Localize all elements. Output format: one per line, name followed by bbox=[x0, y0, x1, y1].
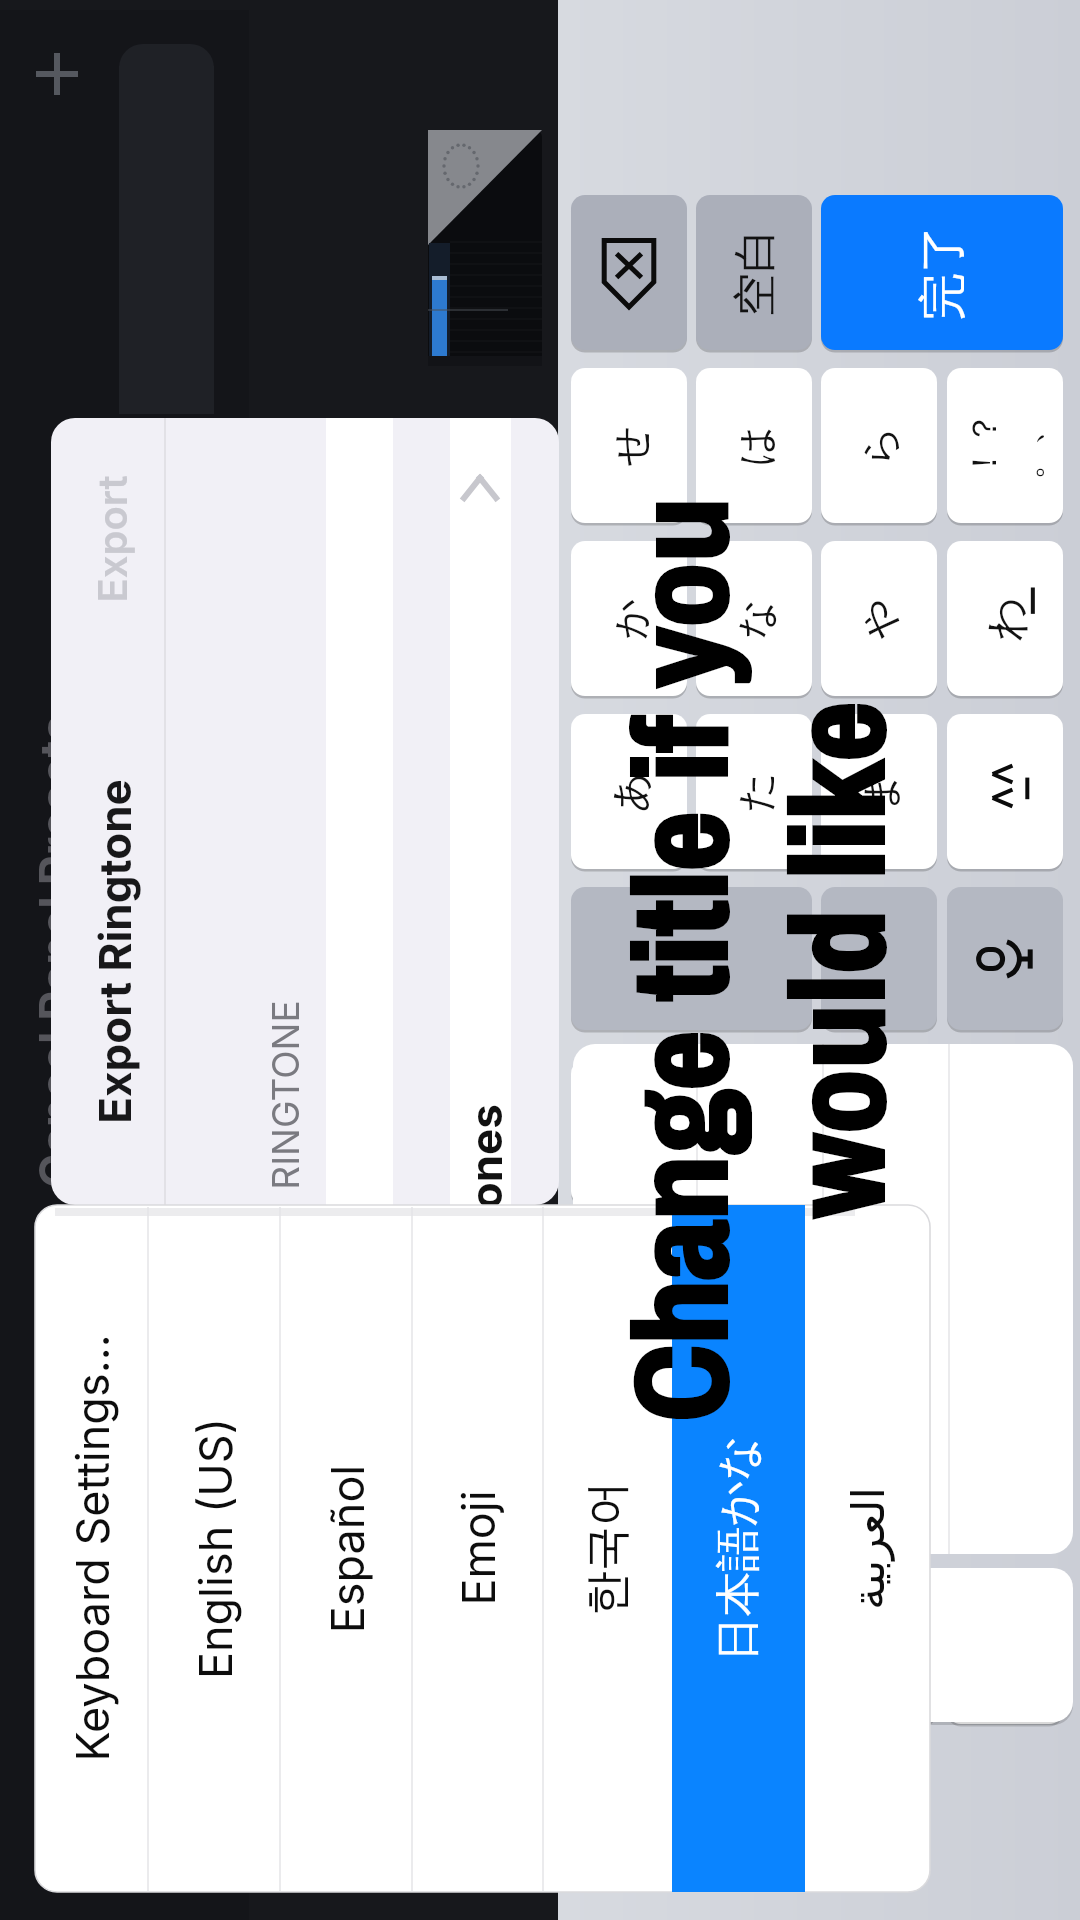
staticText: Export Ringtone bbox=[88, 779, 141, 1124]
button[interactable]: Español bbox=[280, 1205, 412, 1892]
button[interactable]: ！？ 。、 bbox=[947, 368, 1063, 523]
button[interactable]: 空白 bbox=[696, 195, 812, 350]
button[interactable]: Delete bbox=[571, 195, 687, 350]
button[interactable]: あ bbox=[571, 714, 687, 869]
staticText: や bbox=[854, 598, 904, 639]
staticText: か bbox=[604, 598, 654, 639]
button[interactable]: せ bbox=[571, 368, 687, 523]
staticText: ！？ 。、 bbox=[962, 411, 1049, 479]
button[interactable]: か bbox=[571, 541, 687, 696]
button[interactable]: ら bbox=[821, 368, 937, 523]
button[interactable]: は bbox=[696, 368, 812, 523]
staticText: は bbox=[729, 425, 779, 466]
staticText: せ bbox=[604, 425, 654, 466]
staticText: Keyboard Settings… bbox=[65, 1334, 119, 1762]
staticText: 完了 bbox=[912, 224, 972, 320]
staticText: Change title if you would like bbox=[591, 497, 921, 1422]
button[interactable]: た bbox=[696, 714, 812, 869]
button[interactable]: Small kana, dakuten bbox=[947, 714, 1063, 869]
button[interactable]: わ bbox=[947, 541, 1063, 696]
staticText: た bbox=[729, 771, 779, 812]
button[interactable]: 한국어 bbox=[543, 1205, 672, 1892]
staticText: 日本語かな bbox=[710, 1434, 767, 1662]
button[interactable]: や bbox=[821, 541, 937, 696]
staticText: 한국어 bbox=[579, 1481, 636, 1616]
button[interactable]: Collapse bbox=[452, 452, 508, 512]
staticText: な bbox=[729, 598, 779, 639]
staticText: ら bbox=[854, 425, 904, 466]
button[interactable]: ま bbox=[821, 714, 937, 869]
staticText: 空白 bbox=[727, 228, 782, 316]
staticText: Emoji bbox=[451, 1490, 505, 1606]
staticText: Ringtones bbox=[459, 1104, 512, 1321]
button[interactable]: العربية bbox=[805, 1205, 930, 1892]
button[interactable]: 完了 bbox=[821, 195, 1063, 350]
staticText: RINGTONE bbox=[263, 1000, 308, 1190]
button[interactable]: な bbox=[696, 541, 812, 696]
staticText: Export bbox=[88, 475, 136, 603]
staticText: English (US) bbox=[187, 1417, 241, 1679]
button[interactable]: English (US) bbox=[148, 1205, 280, 1892]
staticText: ま bbox=[854, 771, 904, 812]
staticText: あ bbox=[604, 771, 654, 812]
button[interactable]: Emoji bbox=[412, 1205, 543, 1892]
button[interactable]: 日本語かな bbox=[672, 1205, 805, 1892]
button[interactable]: Dictation bbox=[947, 887, 1063, 1030]
staticText: العربية bbox=[842, 1487, 894, 1610]
staticText: わ bbox=[978, 595, 1033, 641]
staticText: Cancel Panel Presets bbox=[28, 715, 84, 1188]
staticText: Español bbox=[319, 1464, 373, 1633]
button[interactable]: Keyboard Settings… bbox=[35, 1205, 148, 1892]
